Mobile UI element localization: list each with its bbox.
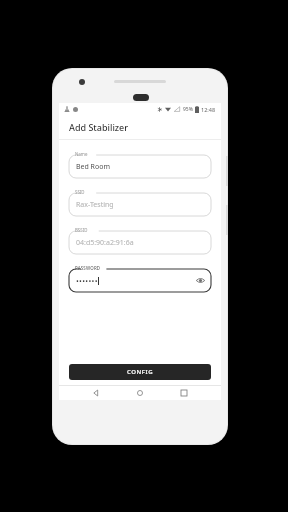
staticText: Rax-Testing bbox=[76, 200, 114, 210]
staticText: BSSID bbox=[75, 227, 88, 233]
staticText: PASSWORD bbox=[75, 265, 101, 271]
button[interactable]: SSID bbox=[69, 189, 211, 216]
staticText: 95% bbox=[183, 106, 193, 113]
staticText: SSID bbox=[75, 189, 85, 195]
button[interactable]: Name bbox=[69, 151, 211, 178]
button[interactable]: Back bbox=[89, 386, 103, 400]
staticText: ••••••• bbox=[76, 276, 98, 286]
button[interactable]: CONFIG bbox=[69, 364, 211, 380]
button[interactable]: PASSWORD bbox=[69, 265, 211, 292]
staticText: 04:d5:90:a2:91:6a bbox=[76, 238, 134, 248]
button[interactable]: BSSID bbox=[69, 227, 211, 254]
staticText: 12:48 bbox=[201, 106, 216, 113]
staticText: CONFIG bbox=[127, 368, 154, 376]
button[interactable]: Show password bbox=[195, 275, 206, 286]
staticText: Add Stabilizer bbox=[69, 121, 129, 133]
staticText: Bed Room bbox=[76, 162, 110, 172]
button[interactable]: Recents bbox=[177, 386, 191, 400]
staticText: Name bbox=[75, 151, 88, 157]
button[interactable]: Home bbox=[133, 386, 147, 400]
